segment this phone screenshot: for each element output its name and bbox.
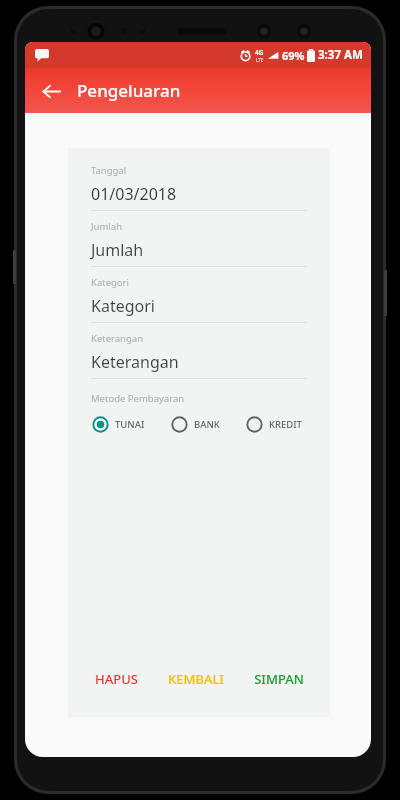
- staticText: BANK: [194, 418, 220, 431]
- staticText: Keterangan: [91, 351, 179, 373]
- staticText: Keterangan: [91, 332, 144, 345]
- staticText: Metode Pembayaran: [91, 392, 185, 405]
- button[interactable]: KEMBALI: [162, 663, 230, 695]
- staticText: TUNAI: [115, 418, 145, 431]
- button[interactable]: SIMPAN: [248, 663, 310, 695]
- staticText: SIMPAN: [254, 670, 304, 688]
- button[interactable]: Kategori: [68, 276, 330, 332]
- staticText: Kategori: [91, 295, 155, 317]
- staticText: 4G: [255, 48, 264, 57]
- staticText: Jumlah: [91, 239, 144, 261]
- staticText: Jumlah: [91, 220, 122, 233]
- button[interactable]: TUNAI: [92, 414, 145, 435]
- staticText: Pengeluaran: [77, 79, 181, 102]
- button[interactable]: Back: [33, 73, 69, 109]
- button[interactable]: KREDIT: [246, 414, 302, 435]
- staticText: KEMBALI: [168, 670, 224, 688]
- staticText: HAPUS: [95, 670, 138, 688]
- staticText: 3:37 AM: [318, 47, 363, 63]
- button[interactable]: Keterangan: [68, 332, 330, 388]
- staticText: LTE: [256, 57, 264, 63]
- staticText: 69%: [282, 48, 305, 63]
- staticText: 01/03/2018: [91, 183, 177, 205]
- staticText: KREDIT: [269, 418, 302, 431]
- staticText: Kategori: [91, 276, 129, 289]
- button[interactable]: Jumlah: [68, 220, 330, 276]
- staticText: Tanggal: [91, 164, 127, 177]
- button[interactable]: Tanggal: [68, 164, 330, 220]
- button[interactable]: BANK: [171, 414, 220, 435]
- button[interactable]: HAPUS: [89, 663, 144, 695]
